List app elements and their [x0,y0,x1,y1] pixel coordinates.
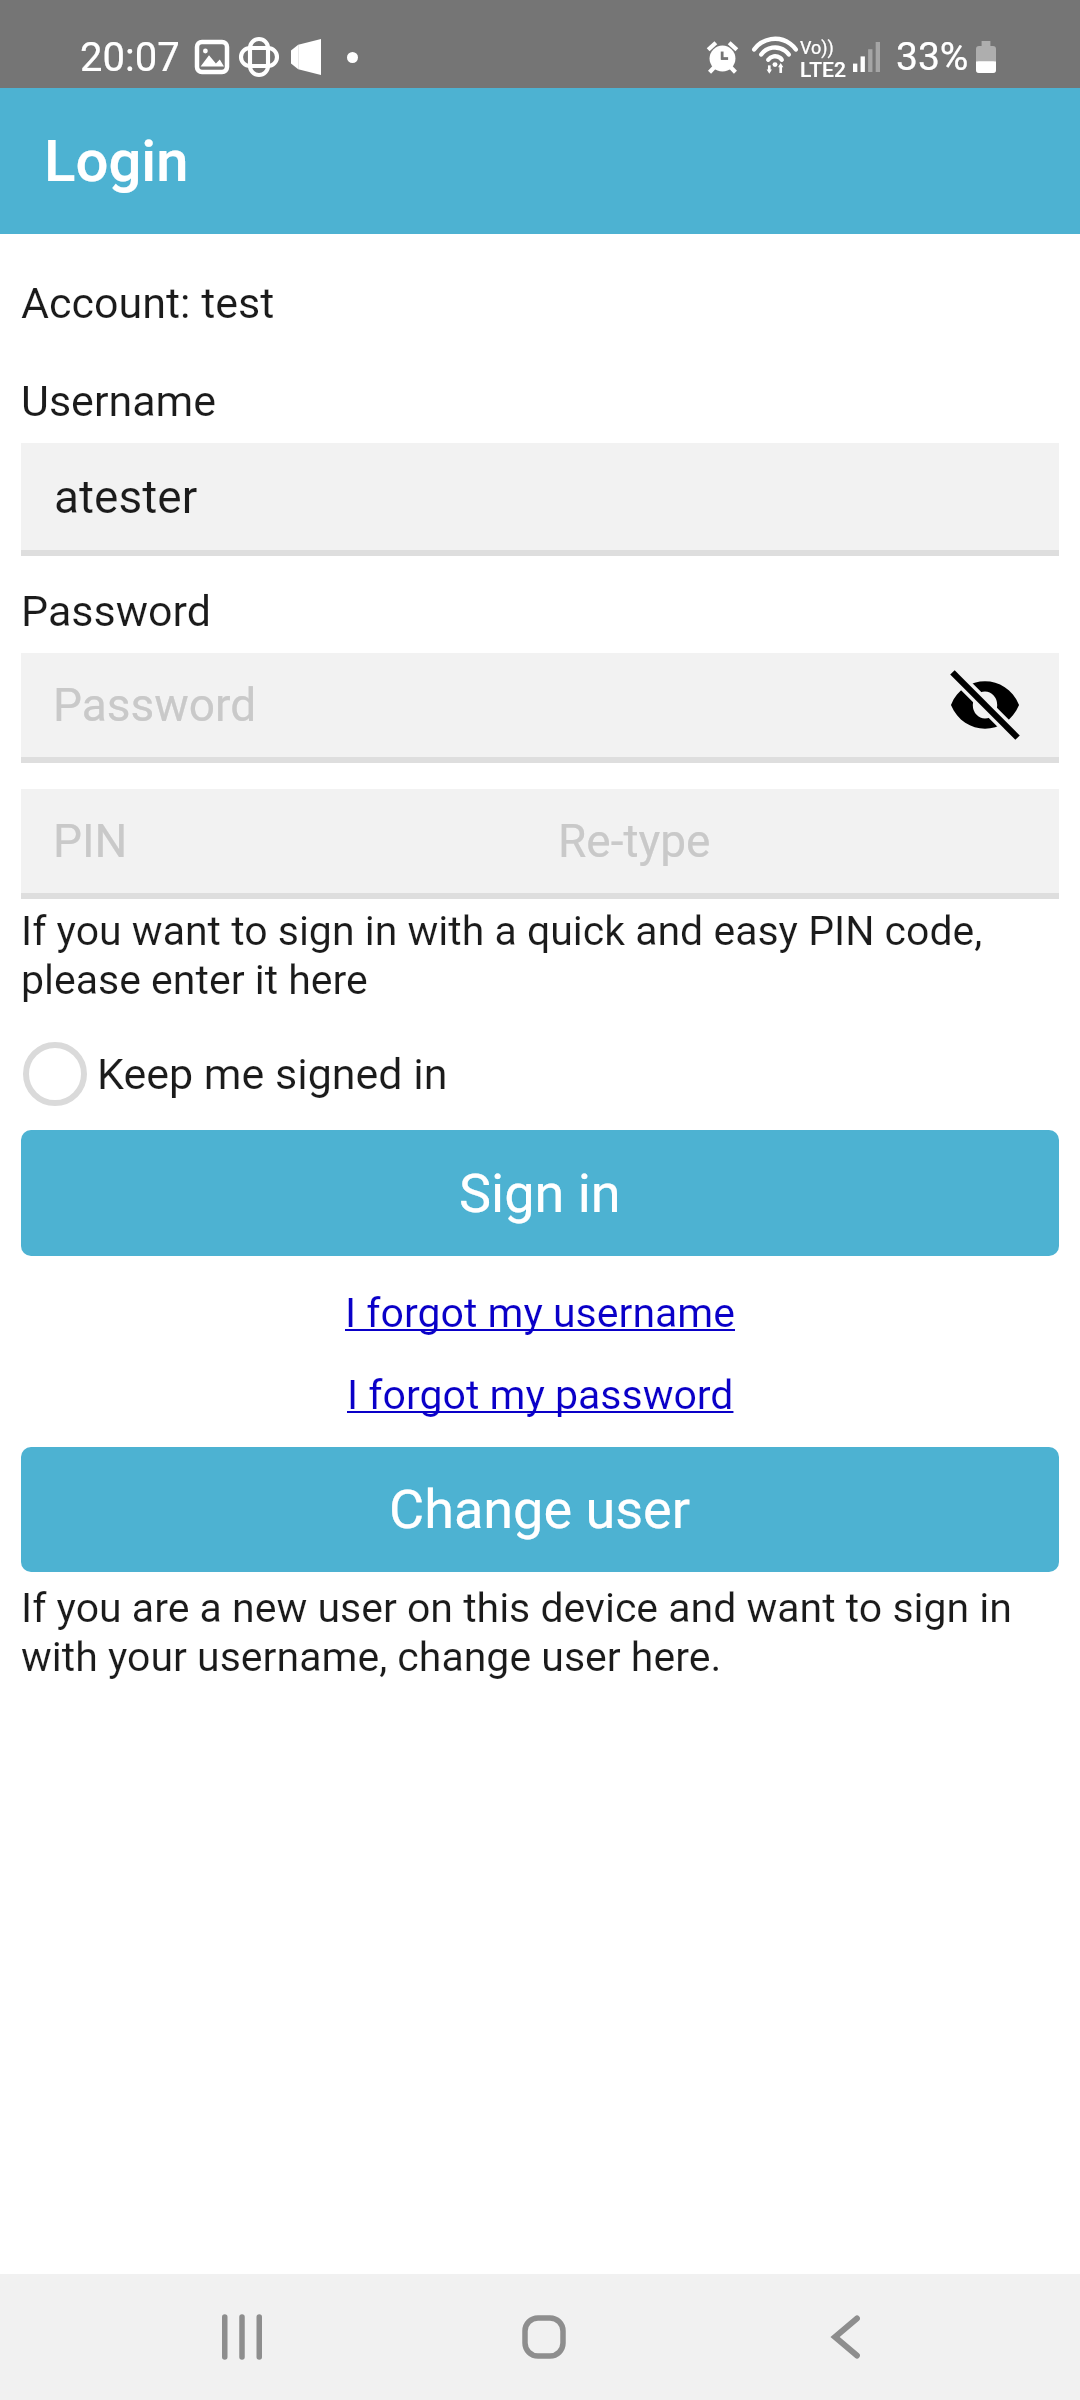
staticText: I forgot my password [347,1371,734,1419]
button[interactable]: I forgot my username [21,1289,1059,1337]
button[interactable]: Password [21,653,1059,757]
staticText: atester [54,470,198,524]
staticText: Login [44,127,189,195]
staticText: If you are a new user on this device and… [21,1584,1059,1681]
button[interactable]: atester [21,443,1059,550]
staticText: LTE2 [800,58,846,77]
staticText: 33% [896,34,969,80]
staticText: PIN [53,814,128,868]
staticText: Password [21,586,211,636]
staticText: If you want to sign in with a quick and … [21,907,1059,1004]
staticText: Vo)) [800,37,834,58]
button[interactable]: Back [783,2274,909,2400]
staticText: 20:07 [80,34,180,80]
button[interactable]: Home [481,2274,607,2400]
button[interactable]: Show password [947,667,1023,743]
staticText: Account: test [21,278,275,328]
staticText: Password [53,678,257,732]
staticText: Change user [389,1478,691,1541]
button[interactable]: Keep me signed in [21,1040,448,1108]
button[interactable]: Change user [21,1447,1059,1572]
staticText: Username [21,376,217,426]
staticText: Re-type [558,814,711,868]
button[interactable]: Re-type [540,789,1059,893]
button[interactable]: Sign in [21,1130,1059,1256]
button[interactable]: Recents [179,2274,305,2400]
button[interactable]: I forgot my password [21,1371,1059,1419]
staticText: Keep me signed in [97,1049,448,1099]
button[interactable]: PIN [21,789,540,893]
staticText: Sign in [459,1162,621,1225]
staticText: I forgot my username [345,1289,736,1337]
